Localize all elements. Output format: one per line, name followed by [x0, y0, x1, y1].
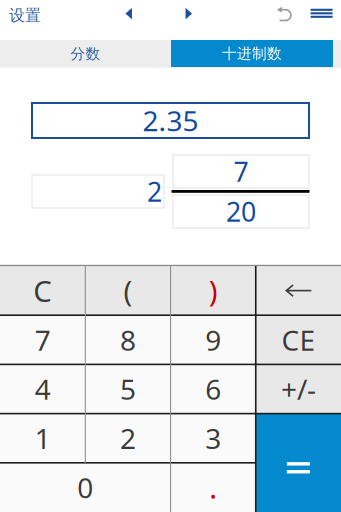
staticText: 7	[35, 321, 51, 358]
button[interactable]: 0	[0, 463, 170, 512]
staticText: CE	[281, 321, 315, 358]
staticText: +/-	[281, 370, 316, 408]
button[interactable]: +/-	[256, 364, 341, 414]
button[interactable]: Settings	[9, 3, 53, 27]
button[interactable]: 20	[173, 195, 309, 228]
button[interactable]: 十进制数	[171, 40, 333, 67]
staticText: 6	[205, 370, 221, 408]
button[interactable]: CE	[256, 315, 341, 364]
staticText: .	[209, 468, 217, 507]
button[interactable]: 6	[170, 364, 256, 414]
button[interactable]: .	[170, 463, 256, 512]
staticText: 1	[35, 420, 51, 457]
button[interactable]: Next	[174, 0, 204, 28]
button[interactable]: 2	[32, 175, 164, 208]
button[interactable]: 7	[0, 315, 85, 364]
staticText: )	[209, 271, 218, 310]
staticText: 4	[35, 370, 51, 408]
button[interactable]: Backspace	[256, 266, 341, 315]
button[interactable]: 7	[173, 155, 309, 188]
button[interactable]: 8	[85, 315, 170, 364]
staticText: 9	[205, 321, 221, 358]
staticText: 2.35	[142, 102, 198, 139]
button[interactable]: 2	[85, 414, 170, 463]
staticText: (	[123, 271, 132, 310]
staticText: C	[33, 271, 52, 310]
button[interactable]: Undo	[270, 1, 300, 29]
button[interactable]: )	[170, 266, 256, 315]
staticText: 3	[205, 420, 221, 457]
staticText: 8	[120, 321, 136, 358]
button[interactable]: Previous	[114, 0, 144, 28]
staticText: 5	[120, 370, 136, 408]
button[interactable]: C	[0, 266, 85, 315]
button[interactable]: 分数	[0, 40, 171, 68]
staticText: 2	[147, 174, 162, 209]
staticText: 20	[226, 194, 256, 229]
button[interactable]: 4	[0, 364, 85, 414]
button[interactable]: 2.35	[32, 103, 309, 138]
staticText: 分数	[70, 45, 100, 63]
button[interactable]: Menu	[305, 0, 339, 27]
button[interactable]: Equals	[256, 414, 341, 512]
staticText: 十进制数	[222, 44, 282, 62]
staticText: 0	[77, 469, 93, 506]
button[interactable]: (	[85, 266, 170, 315]
button[interactable]: 3	[170, 414, 256, 463]
button[interactable]: 9	[170, 315, 256, 364]
button[interactable]: 1	[0, 414, 85, 463]
staticText: 设置	[9, 6, 41, 25]
staticText: 2	[120, 420, 136, 457]
button[interactable]: 5	[85, 364, 170, 414]
staticText: 7	[233, 154, 248, 189]
